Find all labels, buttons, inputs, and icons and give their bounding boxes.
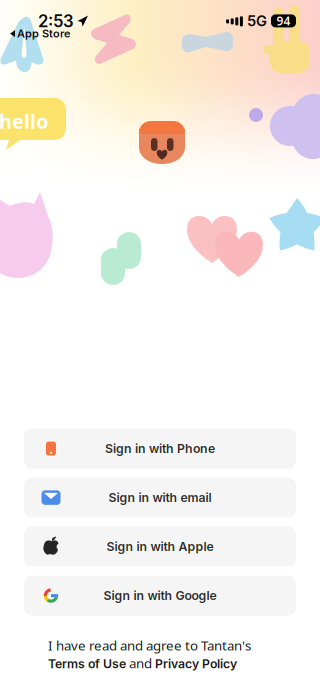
button[interactable]: Sign in with Phone [24,429,296,469]
staticText: Sign in with Phone [105,441,215,456]
staticText: Sign in with email [108,490,211,505]
staticText: Sign in with Apple [106,539,213,554]
staticText: 2:53 [38,11,74,31]
button[interactable]: Sign in with Google [24,576,296,616]
button[interactable]: Sign in with Apple [24,527,296,567]
staticText: hello [0,108,49,134]
staticText: I have read and agree to Tantan's Terms … [48,637,251,672]
staticText: App Store [17,27,70,40]
staticText: 94 [276,13,290,29]
staticText: Sign in with Google [103,588,216,603]
button[interactable]: App Store [8,26,72,41]
button[interactable]: Sign in with email [24,478,296,518]
staticText: 5G [247,12,267,30]
